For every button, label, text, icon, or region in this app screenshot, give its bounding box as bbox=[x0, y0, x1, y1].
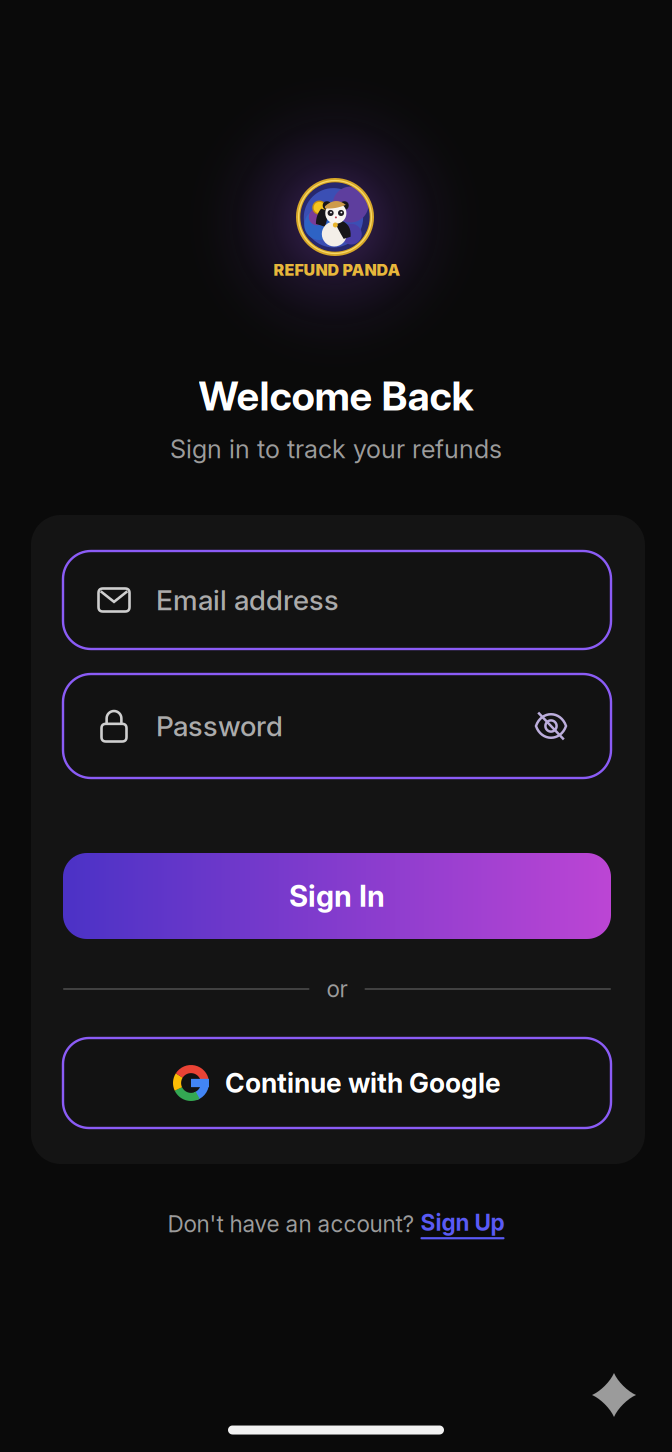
staticText: Sign In bbox=[289, 878, 385, 914]
button[interactable]: Sign Up bbox=[420, 1209, 504, 1239]
button[interactable]: Email address bbox=[63, 551, 611, 649]
button[interactable]: Password bbox=[63, 674, 611, 778]
staticText: Welcome Back bbox=[198, 372, 473, 420]
staticText: Continue with Google bbox=[225, 1067, 501, 1099]
staticText: Sign Up bbox=[420, 1209, 504, 1236]
staticText: REFUND PANDA bbox=[273, 260, 400, 280]
staticText: Password bbox=[156, 709, 283, 743]
staticText: Don't have an account? bbox=[167, 1210, 420, 1238]
button[interactable]: Sign In bbox=[63, 853, 611, 939]
staticText: or bbox=[326, 975, 347, 1003]
staticText: Sign in to track your refunds bbox=[170, 434, 502, 464]
staticText: Email address bbox=[156, 583, 339, 617]
button[interactable]: Continue with Google bbox=[63, 1038, 611, 1128]
